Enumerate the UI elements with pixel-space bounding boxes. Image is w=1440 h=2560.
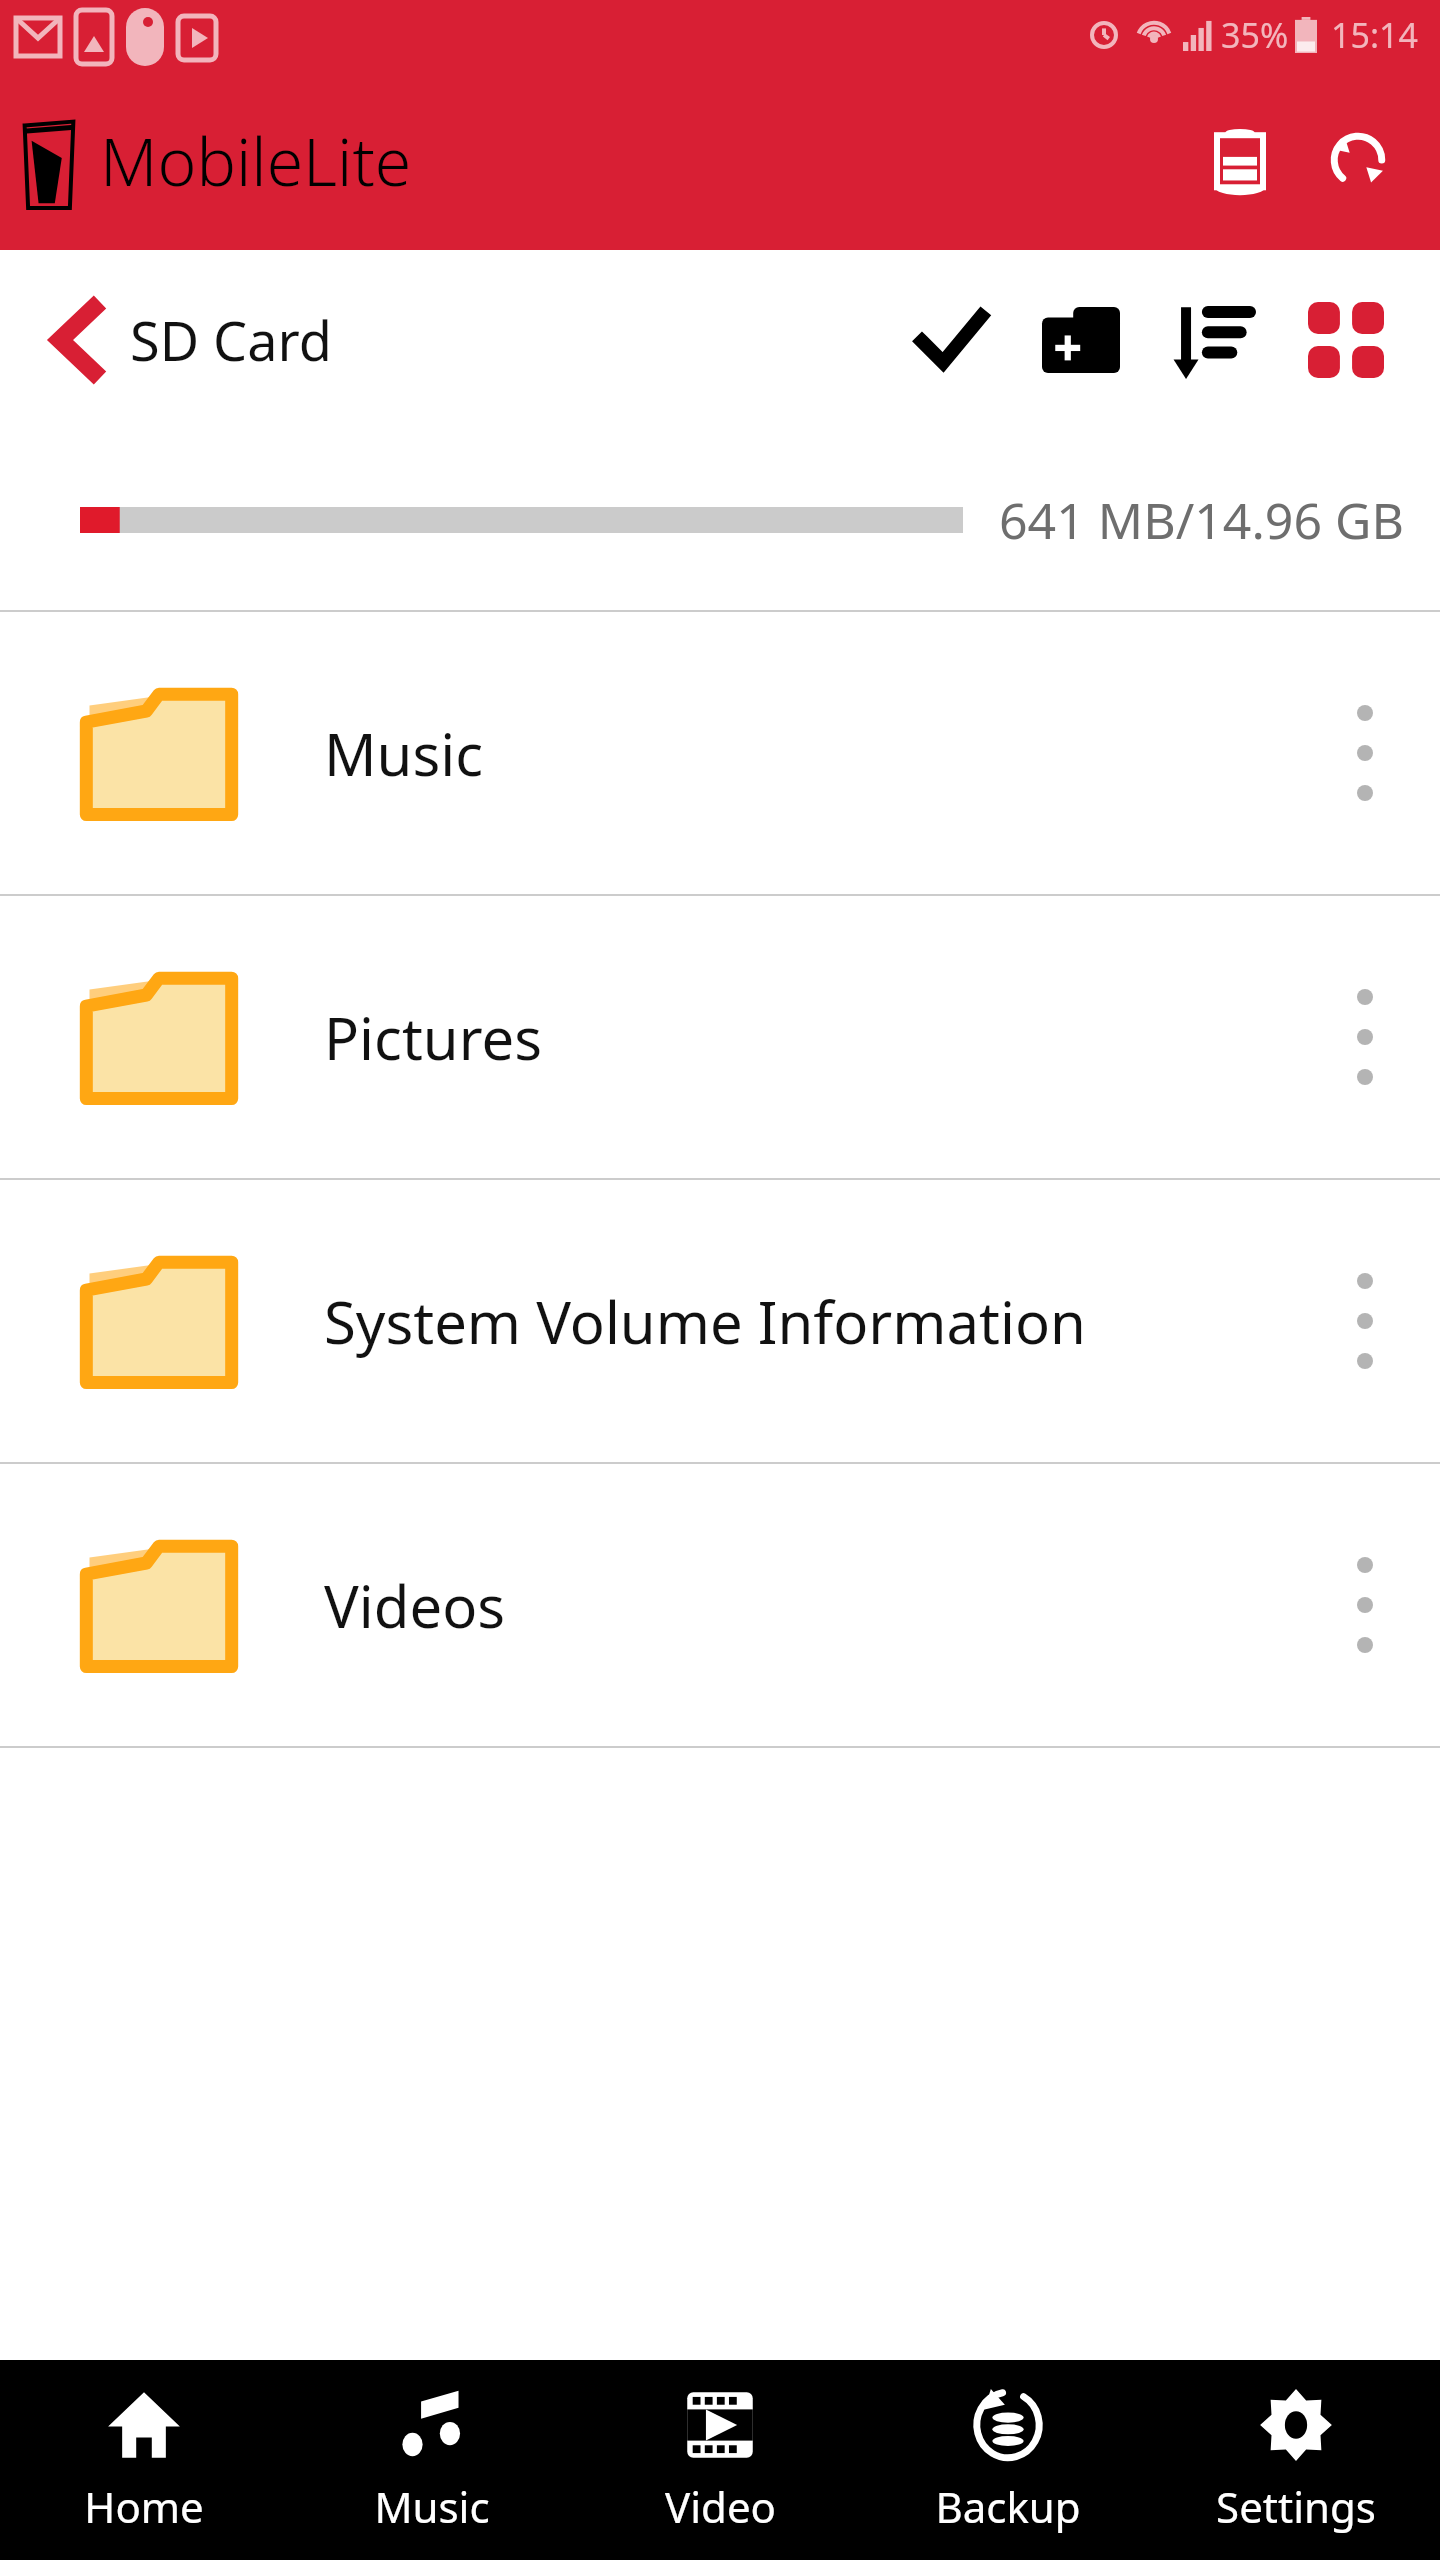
staticText: System Volume Information xyxy=(324,1282,1290,1361)
button[interactable]: Settings xyxy=(1152,2360,1440,2560)
button[interactable]: Refresh xyxy=(1310,112,1406,208)
button[interactable]: System Volume Information xyxy=(0,1180,1440,1462)
button[interactable]: Video xyxy=(576,2360,864,2560)
button[interactable]: Videos xyxy=(0,1464,1440,1746)
button[interactable]: More options xyxy=(1290,612,1440,894)
staticText: Backup xyxy=(935,2478,1081,2535)
staticText: Home xyxy=(84,2478,204,2535)
button[interactable]: Music xyxy=(0,612,1440,894)
staticText: Music xyxy=(374,2478,490,2535)
button[interactable]: Home xyxy=(0,2360,288,2560)
staticText: SD Card xyxy=(130,303,332,377)
button[interactable]: Sort xyxy=(1146,275,1276,405)
staticText: Video xyxy=(665,2478,776,2535)
button[interactable]: More options xyxy=(1290,896,1440,1178)
staticText: 35% xyxy=(1221,12,1289,58)
staticText: Music xyxy=(324,714,1290,793)
button[interactable]: Select xyxy=(886,275,1016,405)
staticText: 641 MB/14.96 GB xyxy=(999,486,1404,554)
button[interactable]: Music xyxy=(288,2360,576,2560)
button[interactable]: Grid view xyxy=(1276,270,1416,410)
button[interactable]: Backup xyxy=(864,2360,1152,2560)
button[interactable]: SD Card xyxy=(0,282,352,398)
staticText: Pictures xyxy=(324,998,1290,1077)
button[interactable]: More options xyxy=(1290,1464,1440,1746)
button[interactable]: Pictures xyxy=(0,896,1440,1178)
button[interactable]: Storage xyxy=(1192,112,1288,208)
staticText: MobileLite xyxy=(100,115,412,205)
button[interactable]: New folder xyxy=(1016,275,1146,405)
staticText: Videos xyxy=(324,1566,1290,1645)
staticText: 15:14 xyxy=(1331,12,1418,58)
button[interactable]: More options xyxy=(1290,1180,1440,1462)
staticText: Settings xyxy=(1216,2478,1376,2535)
